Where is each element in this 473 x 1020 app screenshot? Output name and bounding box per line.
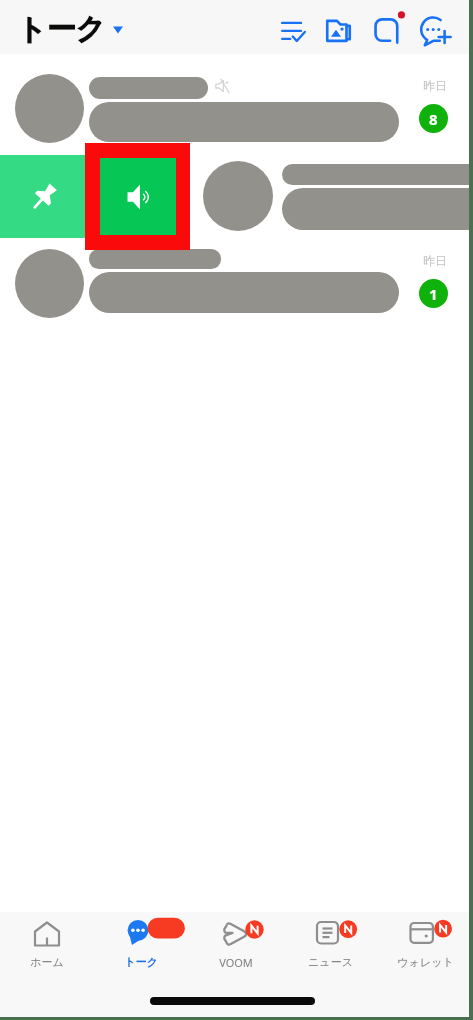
button[interactable]: 昨日 [0, 64, 473, 152]
staticText: VOOM [219, 955, 253, 970]
staticText: 1 [429, 284, 438, 304]
staticText: 昨日 [423, 253, 447, 268]
button[interactable]: ホーム [0, 912, 94, 969]
button[interactable]: VOOM [188, 912, 283, 970]
staticText: ウォレット [397, 955, 454, 969]
staticText: トーク [124, 955, 158, 969]
button[interactable]: Sort chats [273, 11, 314, 52]
button[interactable]: Mute chat [100, 158, 176, 235]
button[interactable]: Pin chat [0, 155, 85, 238]
button[interactable]: Open chat [366, 1, 413, 52]
staticText: 8 [429, 109, 438, 129]
button[interactable]: ウォレット [378, 912, 473, 969]
button[interactable]: 昨日 [0, 239, 473, 327]
staticText: 昨日 [423, 78, 447, 93]
staticText: ニュース [308, 955, 353, 969]
staticText: ホーム [30, 955, 64, 969]
staticText: トーク [17, 11, 106, 48]
button[interactable]: トーク [94, 912, 188, 969]
button[interactable]: New chat [412, 9, 458, 54]
button[interactable]: トーク [17, 11, 121, 48]
button[interactable]: Albums [318, 9, 359, 52]
button[interactable]: ニュース [283, 912, 378, 969]
